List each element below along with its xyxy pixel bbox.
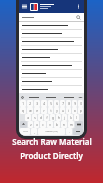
button[interactable]: 1: [20, 100, 26, 107]
staticText: 0: [80, 102, 82, 106]
staticText: q: [22, 109, 24, 113]
button[interactable]: z: [28, 121, 33, 128]
staticText: 8: [68, 102, 70, 106]
button[interactable]: Search: [19, 13, 84, 21]
button[interactable]: c: [40, 121, 46, 128]
button[interactable]: x: [34, 121, 39, 128]
staticText: 6: [56, 102, 58, 106]
button[interactable]: 0: [78, 100, 83, 107]
staticText: e: [36, 109, 38, 113]
button[interactable]: [19, 22, 84, 29]
staticText: t: [50, 109, 52, 113]
button[interactable]: h: [56, 114, 61, 121]
button[interactable]: r: [41, 107, 47, 114]
staticText: u: [62, 109, 64, 113]
staticText: 9: [74, 102, 76, 106]
button[interactable]: [19, 38, 84, 45]
staticText: English (US): [45, 130, 58, 133]
button[interactable]: n: [61, 121, 67, 128]
button[interactable]: Voice input: [20, 95, 25, 100]
button[interactable]: k: [68, 114, 73, 121]
button[interactable]: m: [68, 121, 74, 128]
button[interactable]: ?123: [20, 128, 30, 135]
button[interactable]: More options: [75, 3, 82, 10]
button[interactable]: 9: [72, 100, 77, 107]
staticText: n: [63, 123, 65, 127]
staticText: ?123: [23, 130, 28, 133]
button[interactable]: v: [47, 121, 53, 128]
button[interactable]: 6: [54, 100, 59, 107]
button[interactable]: p: [78, 107, 83, 114]
staticText: r: [43, 109, 45, 113]
button[interactable]: 8: [66, 100, 71, 107]
staticText: y: [56, 109, 58, 113]
button[interactable]: [19, 62, 84, 69]
staticText: 3: [36, 102, 38, 106]
button[interactable]: More suggestions: [78, 95, 83, 100]
staticText: z: [30, 123, 32, 127]
staticText: g: [52, 116, 54, 120]
staticText: h: [58, 116, 60, 120]
button[interactable]: .: [66, 128, 72, 135]
button[interactable]: f: [44, 114, 49, 121]
button[interactable]: Shift: [20, 121, 27, 128]
button[interactable]: a: [25, 114, 31, 121]
button[interactable]: b: [54, 121, 60, 128]
button[interactable]: u: [60, 107, 65, 114]
button[interactable]: 5: [48, 100, 53, 107]
button[interactable]: s: [32, 114, 37, 121]
button[interactable]: Backspace: [75, 121, 83, 128]
staticText: Product Directly: [20, 150, 83, 161]
staticText: d: [40, 116, 42, 120]
staticText: 7: [62, 102, 64, 106]
button[interactable]: j: [62, 114, 67, 121]
staticText: o: [74, 109, 76, 113]
staticText: 5: [50, 102, 52, 106]
button[interactable]: [19, 70, 84, 77]
other: Search: [76, 15, 81, 20]
button[interactable]: [19, 30, 84, 37]
staticText: w: [29, 109, 32, 113]
staticText: c: [42, 123, 44, 127]
button[interactable]: Open navigation menu: [21, 3, 28, 10]
button[interactable]: [19, 78, 84, 85]
button[interactable]: 3: [34, 100, 40, 107]
button[interactable]: 4: [41, 100, 47, 107]
button[interactable]: [19, 86, 84, 93]
button[interactable]: 2: [27, 100, 33, 107]
staticText: 4: [43, 102, 45, 106]
staticText: s: [34, 116, 36, 120]
staticText: x: [36, 123, 38, 127]
button[interactable]: y: [54, 107, 59, 114]
staticText: l: [76, 116, 77, 120]
button[interactable]: w: [27, 107, 33, 114]
staticText: v: [49, 123, 51, 127]
staticText: Search Raw Material: [12, 136, 92, 147]
button[interactable]: 7: [60, 100, 65, 107]
button[interactable]: q: [20, 107, 26, 114]
button[interactable]: ,: [31, 128, 37, 135]
button[interactable]: t: [48, 107, 53, 114]
staticText: b: [56, 123, 58, 127]
staticText: p: [80, 109, 82, 113]
staticText: m: [70, 123, 73, 127]
button[interactable]: English (US): [38, 128, 65, 135]
button[interactable]: [19, 46, 84, 53]
button[interactable]: g: [50, 114, 55, 121]
staticText: .: [69, 130, 70, 134]
staticText: f: [46, 116, 48, 120]
staticText: a: [27, 116, 29, 120]
button[interactable]: Enter: [73, 128, 83, 135]
staticText: j: [64, 116, 65, 120]
button[interactable]: [19, 54, 84, 61]
staticText: k: [70, 116, 72, 120]
button[interactable]: e: [34, 107, 40, 114]
button[interactable]: i: [66, 107, 71, 114]
button[interactable]: o: [72, 107, 77, 114]
staticText: 1: [22, 102, 24, 106]
button[interactable]: l: [74, 114, 79, 121]
staticText: ,: [34, 130, 35, 134]
button[interactable]: d: [38, 114, 43, 121]
staticText: i: [68, 109, 69, 113]
staticText: 2: [29, 102, 31, 106]
